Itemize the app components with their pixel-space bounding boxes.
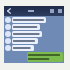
button[interactable] xyxy=(12,24,40,30)
button[interactable]: Back xyxy=(5,7,13,15)
button[interactable] xyxy=(27,52,63,62)
button[interactable] xyxy=(12,38,38,44)
button[interactable] xyxy=(12,17,46,23)
button[interactable] xyxy=(12,31,42,37)
button[interactable] xyxy=(12,45,34,51)
